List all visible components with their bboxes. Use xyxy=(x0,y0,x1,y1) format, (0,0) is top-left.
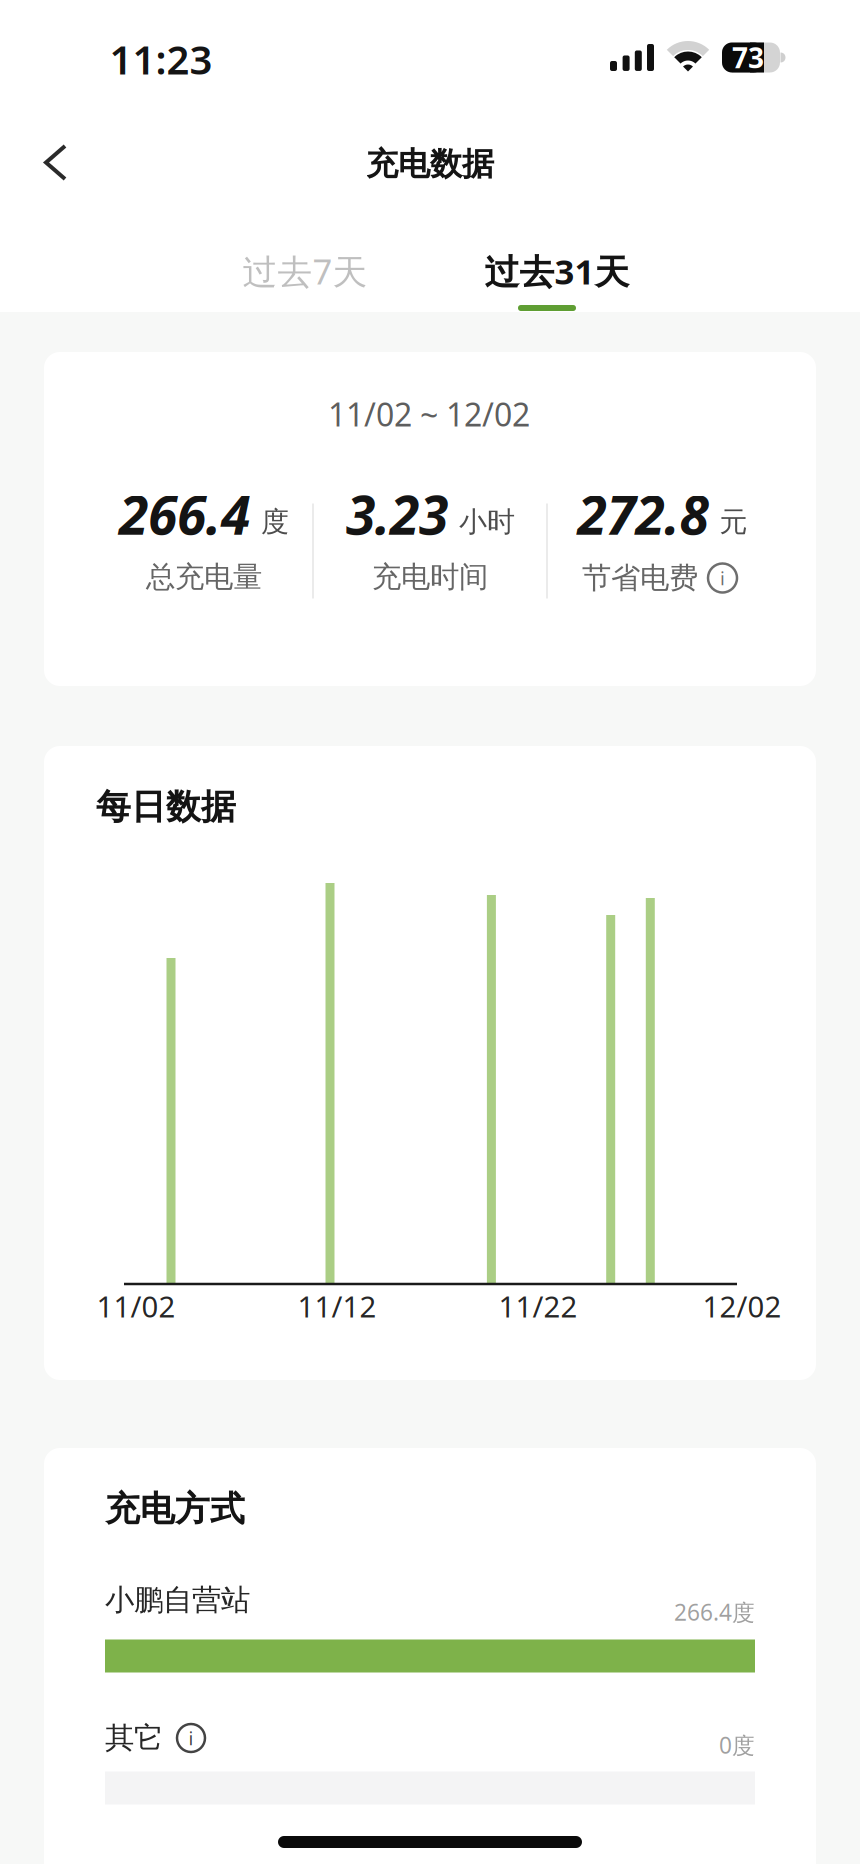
button[interactable]: i xyxy=(177,1724,205,1752)
staticText: 11/02 ~ 12/02 xyxy=(328,393,530,435)
staticText: 11/12 xyxy=(297,1286,376,1325)
staticText: 每日数据 xyxy=(96,786,236,828)
staticText: 其它 xyxy=(105,1720,163,1756)
staticText: i xyxy=(720,566,725,590)
staticText: 充电数据 xyxy=(366,144,494,184)
staticText: 节省电费 xyxy=(582,560,698,596)
staticText: 小时 xyxy=(459,505,515,539)
staticText: 总充电量 xyxy=(146,559,262,595)
staticText: 充电时间 xyxy=(372,559,488,595)
staticText: 小鹏自营站 xyxy=(105,1582,250,1618)
staticText: 3.23 xyxy=(346,479,448,549)
staticText: 266.4度 xyxy=(674,1597,755,1627)
staticText: 11/22 xyxy=(498,1286,577,1325)
staticText: 11:23 xyxy=(109,32,212,85)
staticText: 过去31天 xyxy=(484,248,629,294)
staticText: i xyxy=(188,1726,193,1750)
staticText: 272.8 xyxy=(577,479,708,549)
staticText: 11/02 xyxy=(96,1286,175,1325)
staticText: 0度 xyxy=(719,1730,755,1760)
staticText: 266.4 xyxy=(119,479,250,549)
staticText: 过去7天 xyxy=(242,248,367,294)
button[interactable]: 过去7天 xyxy=(195,231,415,311)
staticText: 73 xyxy=(732,39,764,76)
staticText: 12/02 xyxy=(702,1286,781,1325)
staticText: 元 xyxy=(719,505,747,539)
button[interactable]: 过去31天 xyxy=(447,231,667,311)
button[interactable] xyxy=(40,140,84,185)
button[interactable]: i xyxy=(708,563,737,592)
staticText: 度 xyxy=(261,505,289,539)
staticText: 充电方式 xyxy=(105,1488,245,1530)
